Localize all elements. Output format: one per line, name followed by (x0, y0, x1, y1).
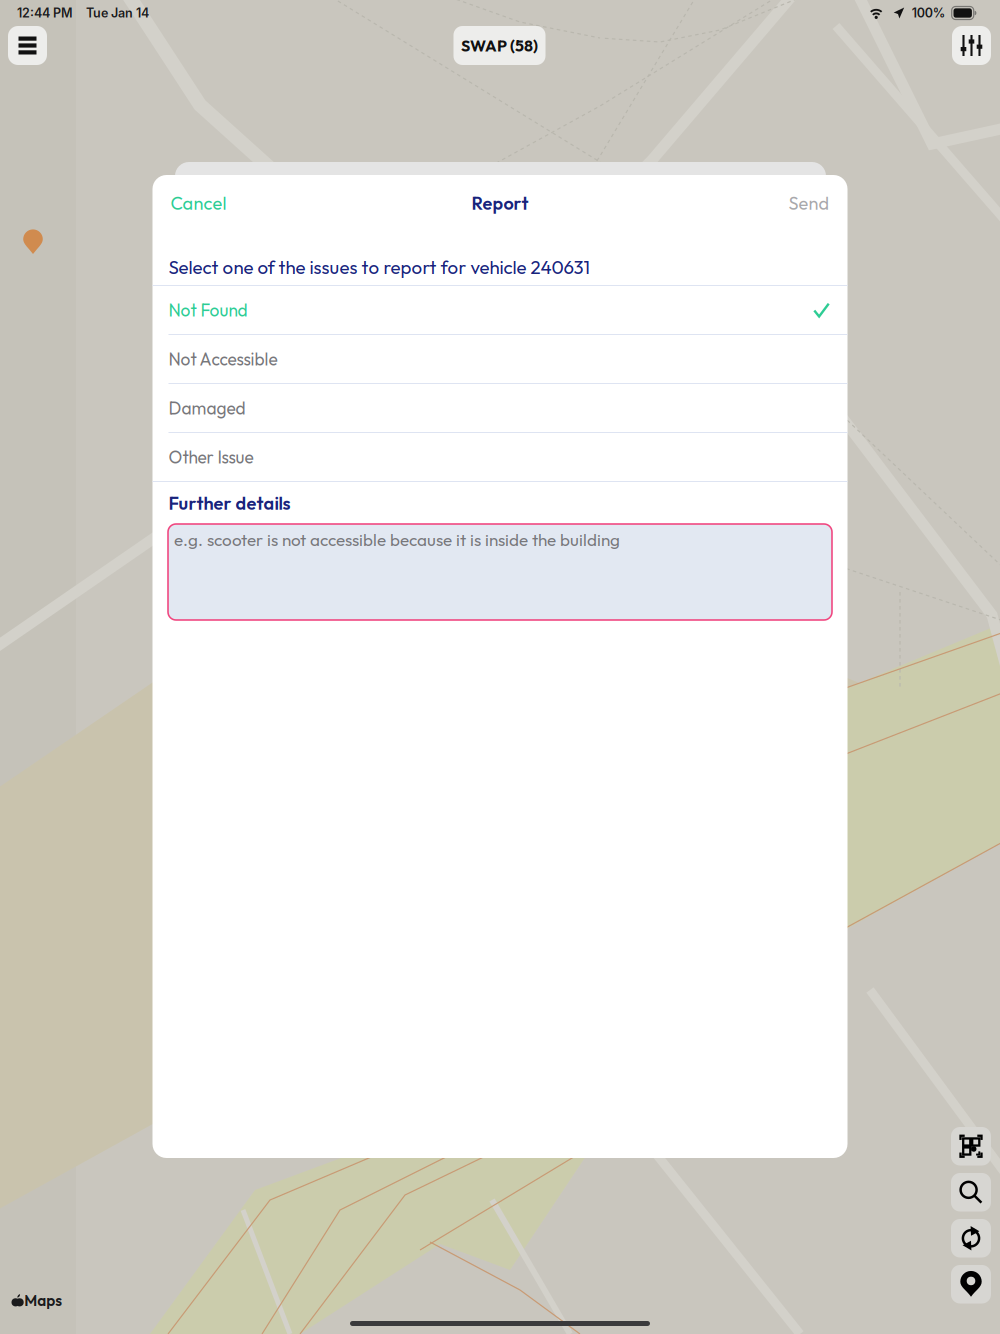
staticText: Not Found (168, 299, 247, 321)
button[interactable]: Refresh (951, 1219, 991, 1257)
button[interactable]: Menu (8, 26, 47, 65)
staticText: Tue Jan 14 (86, 5, 149, 21)
staticText: Other Issue (168, 446, 253, 468)
staticText: Send (788, 192, 829, 214)
button[interactable]: Other Issue (152, 433, 847, 481)
button[interactable]: Cancel (166, 180, 230, 226)
button[interactable]: Filters (952, 26, 991, 65)
button[interactable]: Scan QR code (951, 1127, 991, 1165)
staticText: Cancel (170, 192, 226, 214)
button[interactable]: Damaged (152, 384, 847, 432)
button[interactable]: Not Found (152, 286, 847, 334)
button[interactable]: Send (784, 180, 833, 226)
staticText: Maps (24, 1291, 62, 1310)
staticText: 12:44 PM (17, 5, 73, 21)
button[interactable]: My location (951, 1265, 991, 1303)
staticText: Damaged (168, 397, 245, 419)
staticText: Select one of the issues to report for v… (168, 255, 589, 279)
staticText: Report (471, 192, 528, 214)
button[interactable]: e.g. scooter is not accessible because i… (168, 524, 832, 620)
button[interactable]: Not Accessible (152, 335, 847, 383)
staticText: 100% (912, 5, 946, 21)
staticText: e.g. scooter is not accessible because i… (174, 529, 620, 550)
staticText: Not Accessible (168, 348, 277, 370)
staticText: Further details (168, 492, 290, 514)
button[interactable]: SWAP (58) (453, 26, 545, 65)
staticText: SWAP (58) (461, 35, 538, 56)
button[interactable]: Search (951, 1173, 991, 1211)
